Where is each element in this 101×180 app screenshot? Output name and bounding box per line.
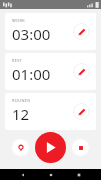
- staticText: 12: [12, 104, 30, 124]
- staticText: WORK: [12, 18, 25, 23]
- button[interactable]: Edit: [73, 103, 90, 120]
- button[interactable]: WORK: [5, 13, 96, 50]
- button[interactable]: ROUNDS: [5, 93, 96, 130]
- button[interactable]: Back: [17, 169, 28, 180]
- button[interactable]: Edit: [73, 63, 90, 80]
- button[interactable]: Recents: [73, 169, 84, 180]
- staticText: REST: [12, 58, 23, 63]
- button[interactable]: Home: [45, 169, 56, 180]
- button[interactable]: Start: [35, 132, 66, 163]
- button[interactable]: Edit: [73, 23, 90, 40]
- staticText: ROUNDS: [12, 98, 31, 103]
- button[interactable]: Settings: [11, 138, 30, 157]
- button[interactable]: REST: [5, 53, 96, 90]
- button[interactable]: Stop: [71, 138, 90, 157]
- staticText: 01:00: [12, 64, 51, 84]
- staticText: 03:00: [12, 24, 51, 44]
